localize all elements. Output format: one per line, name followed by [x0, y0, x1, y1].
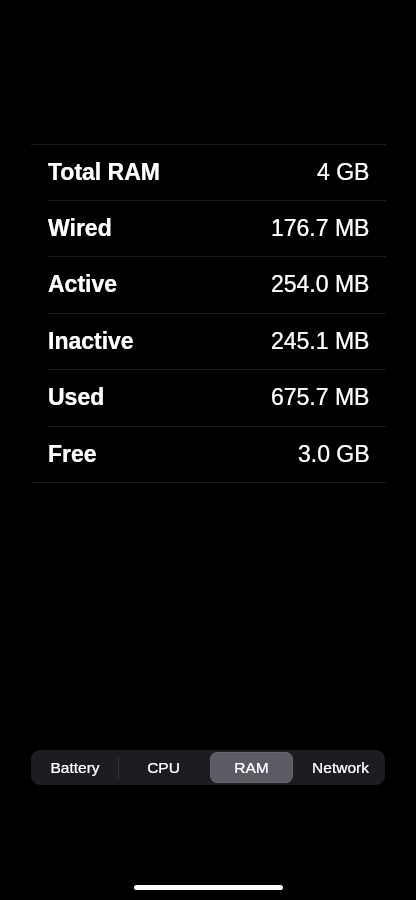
button[interactable]: Inactive [0, 313, 416, 369]
staticText: Inactive [48, 328, 134, 354]
staticText: 3.0 GB [298, 441, 370, 467]
button[interactable]: CPU [119, 750, 207, 785]
staticText: 675.7 MB [271, 384, 370, 410]
staticText: 4 GB [317, 159, 370, 185]
staticText: Network [312, 759, 369, 776]
staticText: Active [48, 271, 118, 297]
staticText: Free [48, 441, 97, 467]
staticText: Total RAM [48, 159, 161, 185]
button[interactable]: Network [296, 750, 385, 785]
staticText: Battery [50, 759, 100, 776]
staticText: Wired [48, 215, 112, 241]
button[interactable]: Battery [31, 750, 119, 785]
staticText: 245.1 MB [271, 328, 370, 354]
button[interactable]: Wired [0, 200, 416, 256]
button[interactable]: Active [0, 256, 416, 312]
button[interactable]: Used [0, 369, 416, 425]
staticText: RAM [234, 759, 269, 776]
button[interactable]: RAM [207, 750, 296, 785]
staticText: CPU [147, 759, 180, 776]
staticText: Used [48, 384, 105, 410]
staticText: 176.7 MB [271, 215, 370, 241]
button[interactable]: Total RAM [0, 144, 416, 200]
button[interactable]: Free [0, 426, 416, 482]
staticText: 254.0 MB [271, 271, 370, 297]
